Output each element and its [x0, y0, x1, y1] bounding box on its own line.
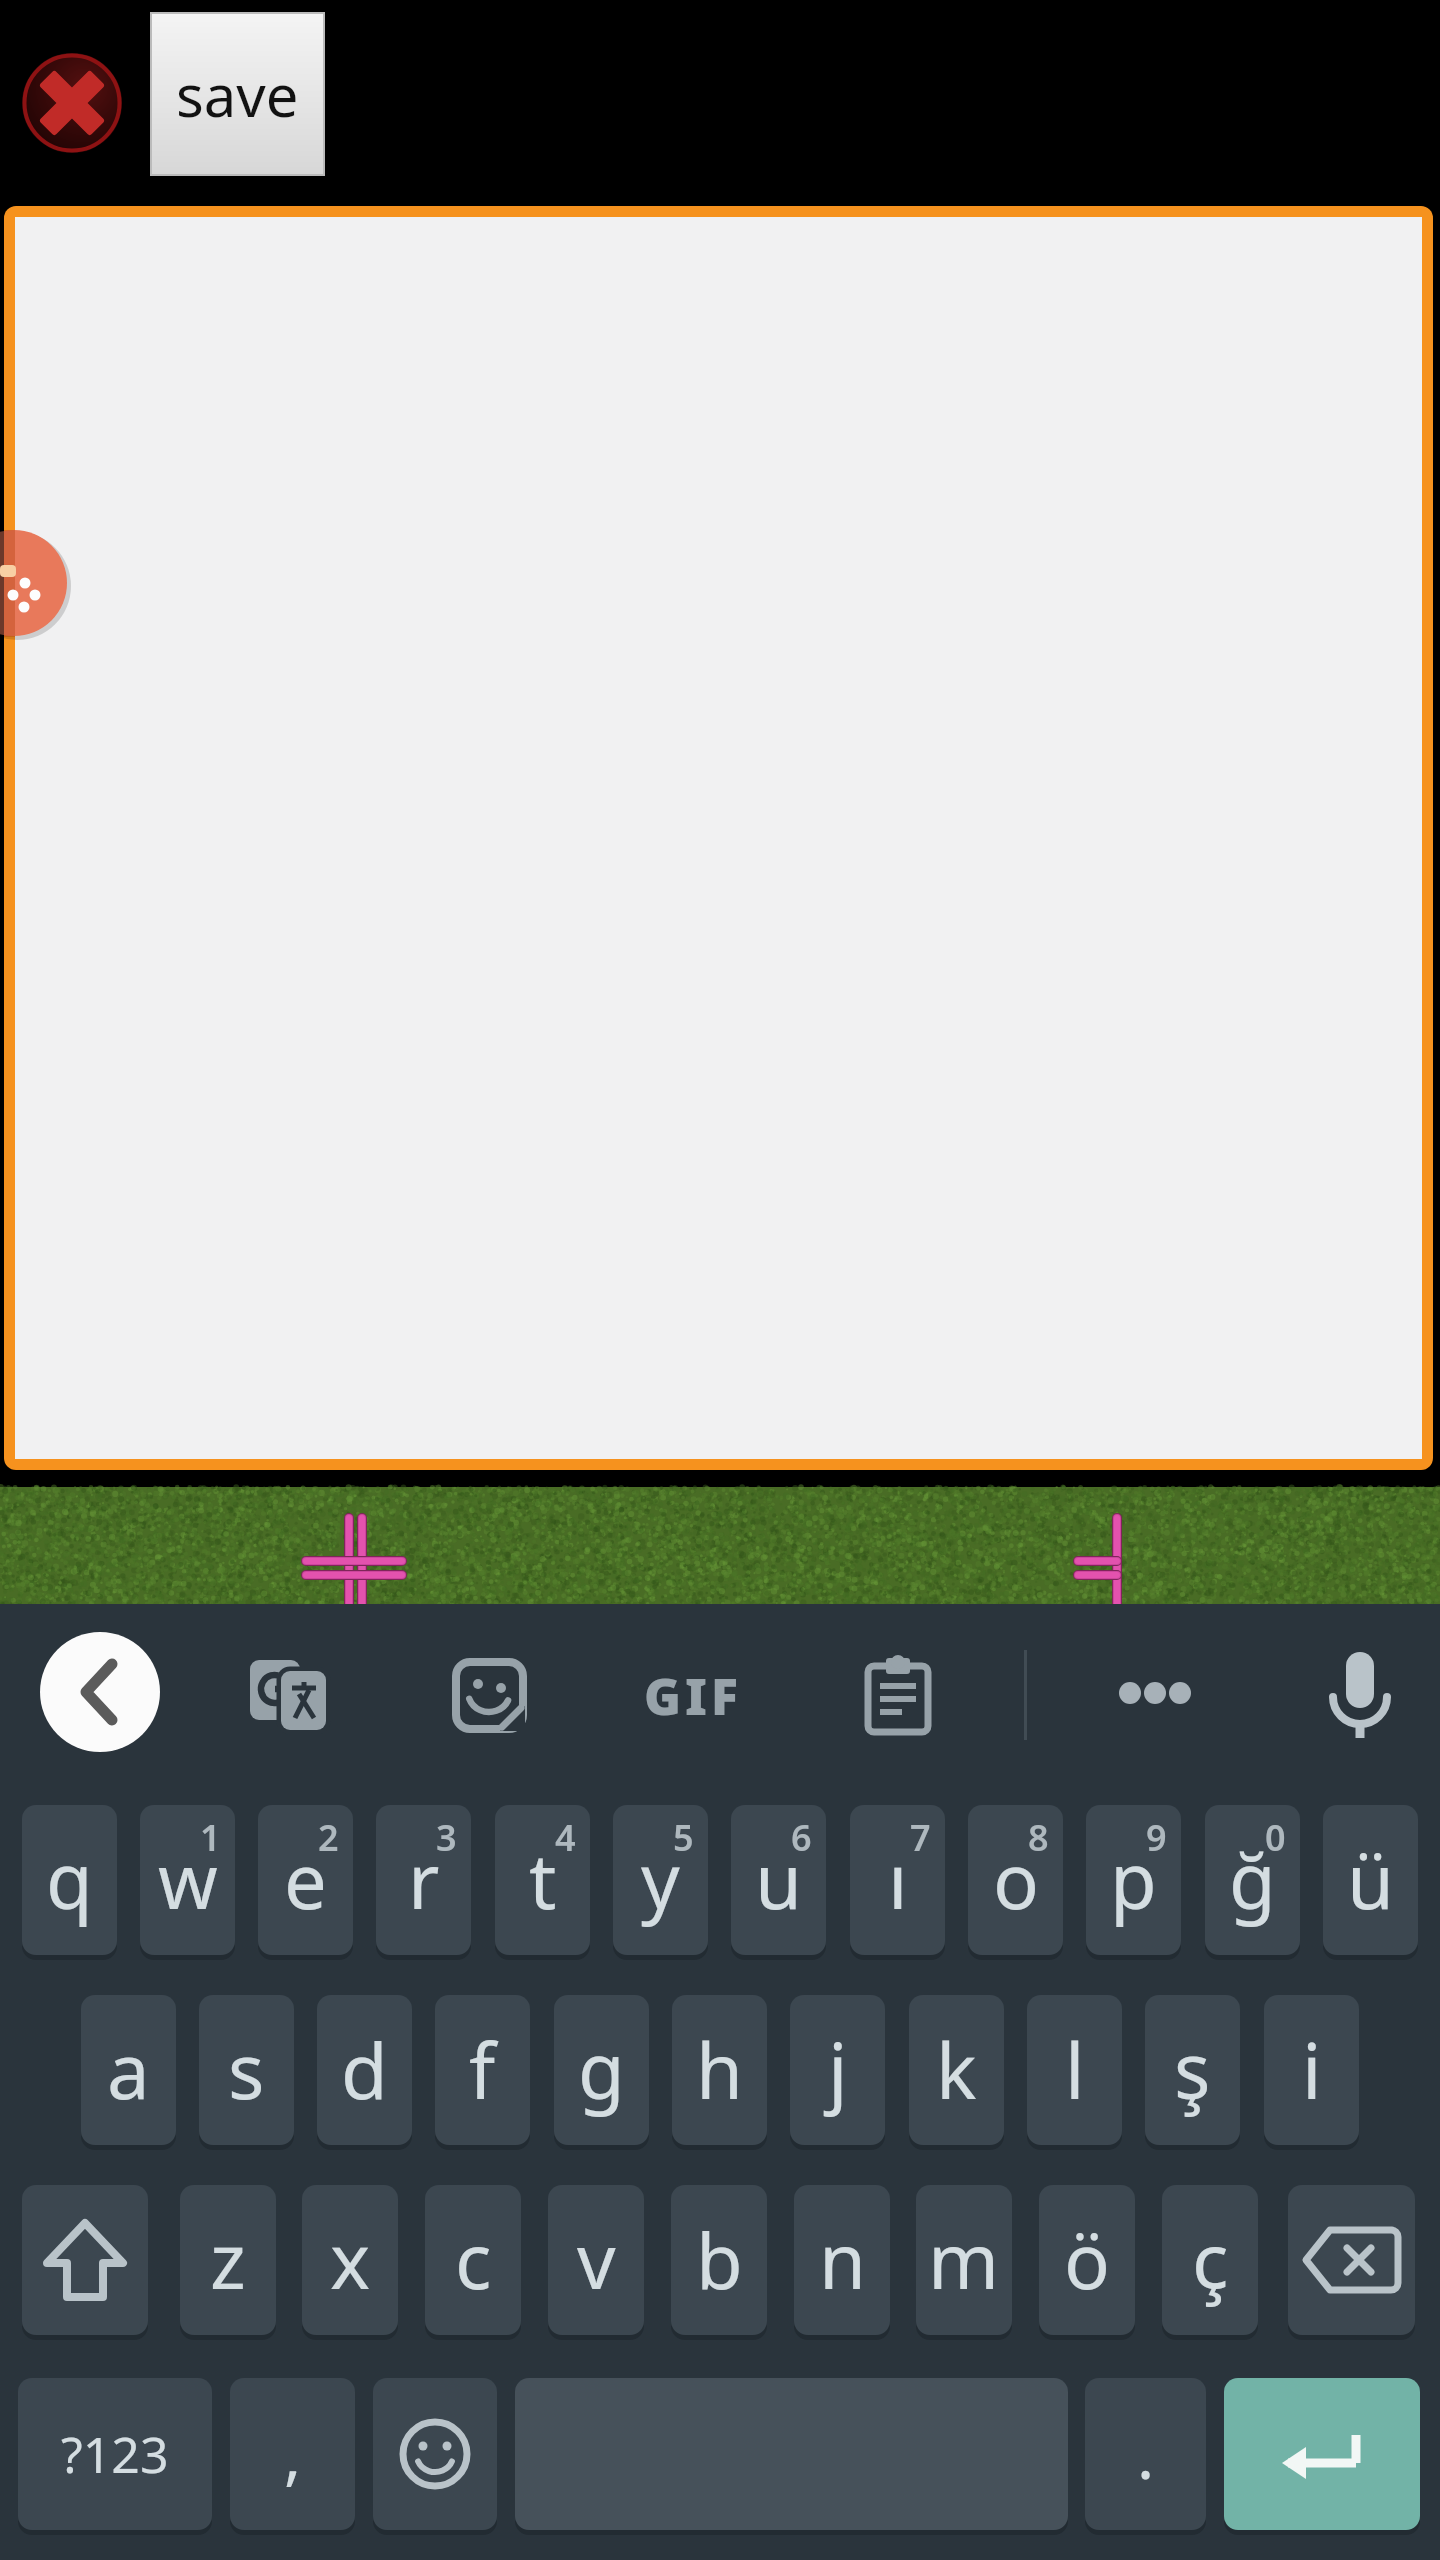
- button[interactable]: t: [495, 1805, 590, 1955]
- staticText: v: [577, 2208, 616, 2312]
- button[interactable]: x: [302, 2185, 398, 2335]
- staticText: s: [228, 2018, 265, 2122]
- button[interactable]: f: [435, 1995, 530, 2145]
- button[interactable]: g: [554, 1995, 649, 2145]
- button[interactable]: z: [180, 2185, 276, 2335]
- staticText: 4: [555, 1813, 576, 1862]
- staticText: o: [993, 1828, 1039, 1932]
- button[interactable]: e: [258, 1805, 353, 1955]
- button[interactable]: b: [671, 2185, 767, 2335]
- staticText: save: [176, 55, 299, 134]
- button[interactable]: i: [1264, 1995, 1359, 2145]
- staticText: g: [578, 2018, 625, 2122]
- button[interactable]: [22, 2185, 148, 2335]
- staticText: t: [529, 1828, 557, 1932]
- button[interactable]: GIF: [638, 1662, 748, 1726]
- staticText: .: [1137, 2411, 1155, 2498]
- button[interactable]: d: [317, 1995, 412, 2145]
- button[interactable]: [452, 1658, 527, 1733]
- button[interactable]: h: [672, 1995, 767, 2145]
- button[interactable]: k: [909, 1995, 1004, 2145]
- button[interactable]: save: [151, 13, 324, 175]
- button[interactable]: j: [790, 1995, 885, 2145]
- staticText: i: [1302, 2018, 1322, 2122]
- staticText: b: [696, 2208, 743, 2312]
- button[interactable]: [373, 2378, 497, 2530]
- staticText: j: [828, 2018, 848, 2122]
- staticText: x: [330, 2208, 371, 2312]
- button[interactable]: q: [22, 1805, 117, 1955]
- button[interactable]: w: [140, 1805, 235, 1955]
- staticText: y: [641, 1828, 680, 1932]
- staticText: q: [46, 1828, 93, 1932]
- button[interactable]: [40, 1632, 160, 1752]
- staticText: n: [819, 2208, 866, 2312]
- button[interactable]: s: [199, 1995, 294, 2145]
- button[interactable]: ö: [1039, 2185, 1135, 2335]
- staticText: ç: [1192, 2208, 1229, 2312]
- button[interactable]: [1224, 2378, 1420, 2530]
- staticText: z: [210, 2208, 246, 2312]
- button[interactable]: ü: [1323, 1805, 1418, 1955]
- staticText: r: [408, 1828, 440, 1932]
- staticText: u: [755, 1828, 802, 1932]
- button[interactable]: n: [794, 2185, 890, 2335]
- button[interactable]: v: [548, 2185, 644, 2335]
- staticText: 7: [910, 1813, 931, 1862]
- button[interactable]: ş: [1145, 1995, 1240, 2145]
- button[interactable]: r: [376, 1805, 471, 1955]
- button[interactable]: [15, 217, 1422, 1459]
- staticText: m: [928, 2208, 1000, 2312]
- staticText: 2: [318, 1813, 339, 1862]
- button[interactable]: [20, 51, 123, 154]
- staticText: w: [158, 1828, 218, 1932]
- staticText: 5: [673, 1813, 694, 1862]
- button[interactable]: m: [916, 2185, 1012, 2335]
- button[interactable]: ğ: [1205, 1805, 1300, 1955]
- staticText: e: [284, 1828, 327, 1932]
- staticText: l: [1065, 2018, 1085, 2122]
- button[interactable]: ı: [850, 1805, 945, 1955]
- staticText: h: [696, 2018, 743, 2122]
- button[interactable]: a: [81, 1995, 176, 2145]
- button[interactable]: ,: [230, 2378, 355, 2530]
- button[interactable]: .: [1085, 2378, 1206, 2530]
- staticText: k: [936, 2018, 977, 2122]
- staticText: ö: [1064, 2208, 1110, 2312]
- staticText: ş: [1174, 2018, 1211, 2122]
- staticText: 8: [1028, 1813, 1049, 1862]
- button[interactable]: [860, 1654, 936, 1736]
- staticText: 3: [436, 1813, 457, 1862]
- button[interactable]: [1288, 2185, 1415, 2335]
- staticText: a: [107, 2018, 150, 2122]
- staticText: 1: [200, 1813, 221, 1862]
- button[interactable]: p: [1086, 1805, 1181, 1955]
- staticText: GIF: [644, 1662, 742, 1726]
- button[interactable]: ?123: [18, 2378, 212, 2530]
- button[interactable]: [1110, 1674, 1200, 1714]
- staticText: 6: [791, 1813, 812, 1862]
- button[interactable]: c: [425, 2185, 521, 2335]
- button[interactable]: y: [613, 1805, 708, 1955]
- button[interactable]: [1325, 1648, 1395, 1740]
- button[interactable]: [248, 1658, 328, 1730]
- button[interactable]: o: [968, 1805, 1063, 1955]
- staticText: 0: [1265, 1813, 1286, 1862]
- button[interactable]: u: [731, 1805, 826, 1955]
- staticText: ı: [888, 1828, 908, 1932]
- button[interactable]: [0, 530, 70, 637]
- staticText: c: [455, 2208, 492, 2312]
- button[interactable]: l: [1027, 1995, 1122, 2145]
- staticText: d: [341, 2018, 388, 2122]
- staticText: ,: [284, 2411, 302, 2498]
- staticText: ü: [1347, 1828, 1394, 1932]
- staticText: ?123: [61, 2420, 169, 2488]
- staticText: 9: [1146, 1813, 1167, 1862]
- button[interactable]: ç: [1162, 2185, 1258, 2335]
- staticText: p: [1110, 1828, 1157, 1932]
- staticText: f: [469, 2018, 496, 2122]
- staticText: ğ: [1229, 1828, 1276, 1932]
